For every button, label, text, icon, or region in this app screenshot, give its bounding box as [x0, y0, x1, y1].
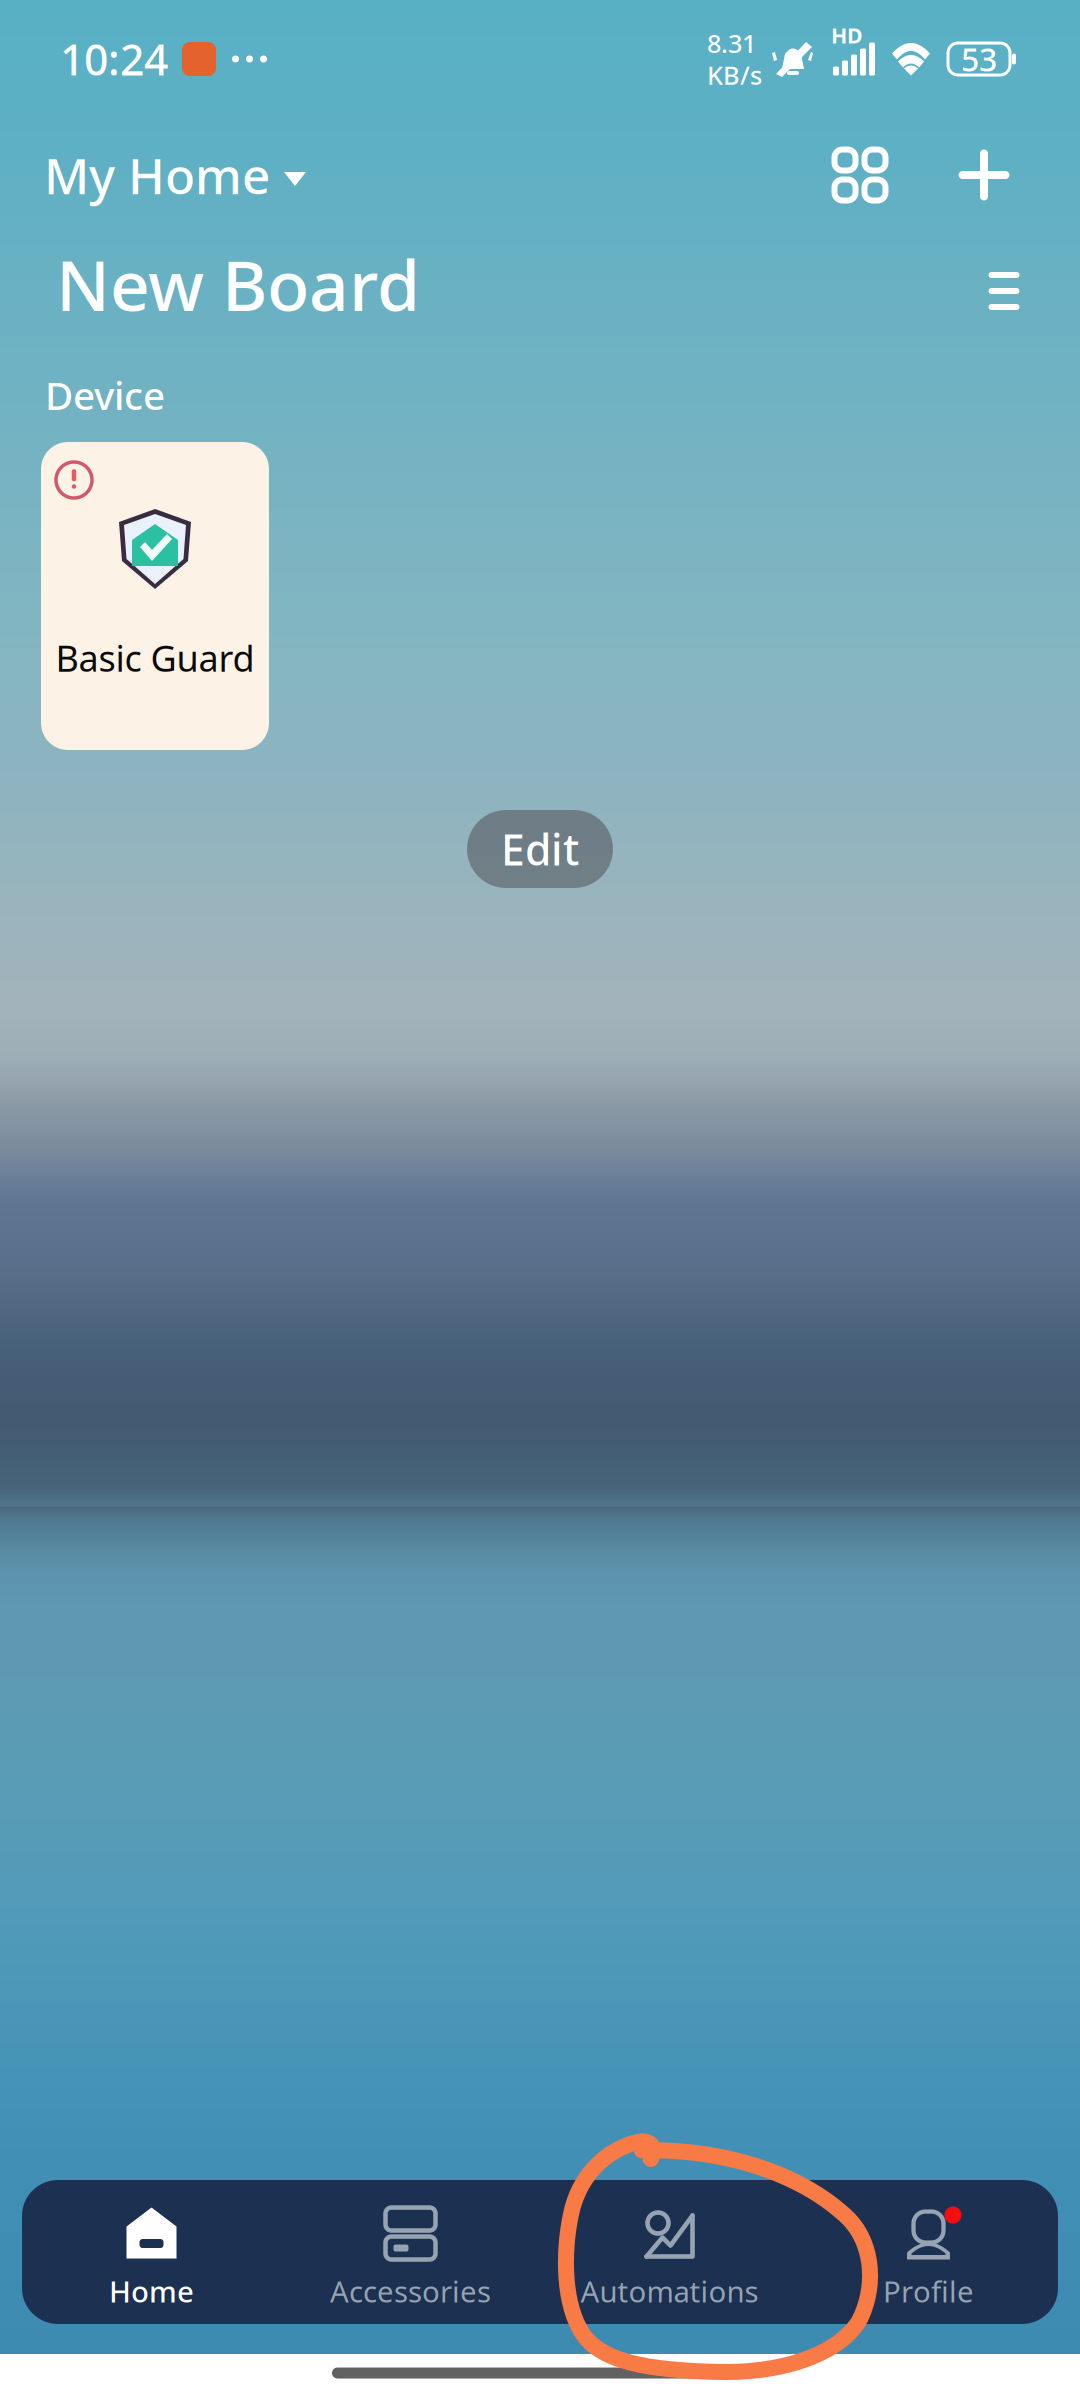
staticText: 53: [961, 38, 997, 80]
staticText: Basic Guard: [55, 634, 254, 682]
staticText: Profile: [883, 2271, 974, 2310]
staticText: Accessories: [330, 2271, 491, 2310]
button[interactable]: Accessories: [281, 2175, 540, 2328]
button[interactable]: Home: [22, 2175, 281, 2328]
button[interactable]: Automations: [540, 2175, 799, 2328]
staticText: 8.31: [707, 26, 756, 60]
button[interactable]: Basic Guard: [41, 442, 269, 750]
staticText: Automations: [580, 2271, 758, 2310]
button[interactable]: My Home: [44, 132, 306, 218]
staticText: Device: [45, 369, 165, 421]
staticText: Home: [109, 2271, 194, 2310]
staticText: New Board: [56, 238, 420, 330]
button[interactable]: Add device: [936, 127, 1032, 223]
button[interactable]: Edit: [467, 810, 613, 888]
staticText: Edit: [501, 821, 579, 877]
staticText: KB/s: [707, 58, 762, 92]
button[interactable]: Rooms: [812, 127, 908, 223]
staticText: My Home: [44, 142, 270, 208]
button[interactable]: Profile: [799, 2175, 1058, 2328]
button[interactable]: Board options: [966, 253, 1042, 329]
staticText: HD: [831, 21, 863, 49]
staticText: 10:24: [60, 31, 168, 87]
